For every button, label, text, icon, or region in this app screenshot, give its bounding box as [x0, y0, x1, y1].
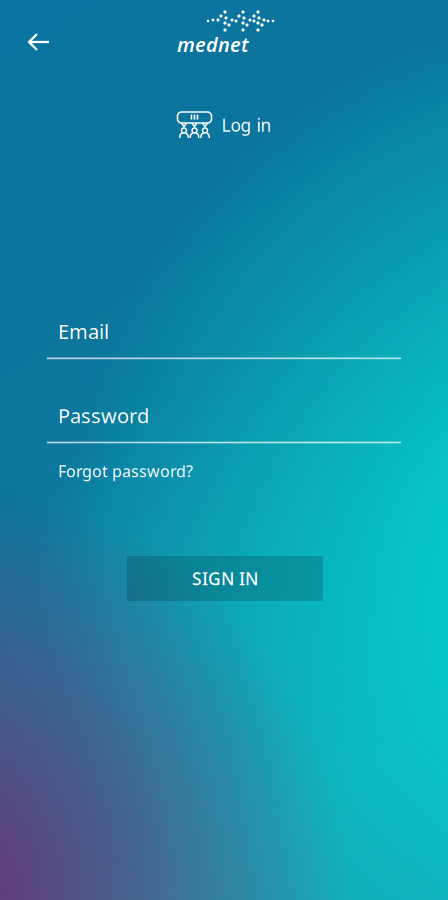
staticText: SIGN IN: [192, 567, 258, 590]
staticText: Email: [58, 318, 109, 345]
button[interactable]: Back: [18, 21, 61, 63]
staticText: Forgot password?: [58, 460, 193, 481]
staticText: Password: [58, 402, 149, 429]
button[interactable]: SIGN IN: [127, 556, 323, 601]
staticText: mednet: [177, 31, 249, 58]
button[interactable]: Forgot password?: [47, 457, 193, 484]
staticText: Log in: [221, 113, 271, 136]
